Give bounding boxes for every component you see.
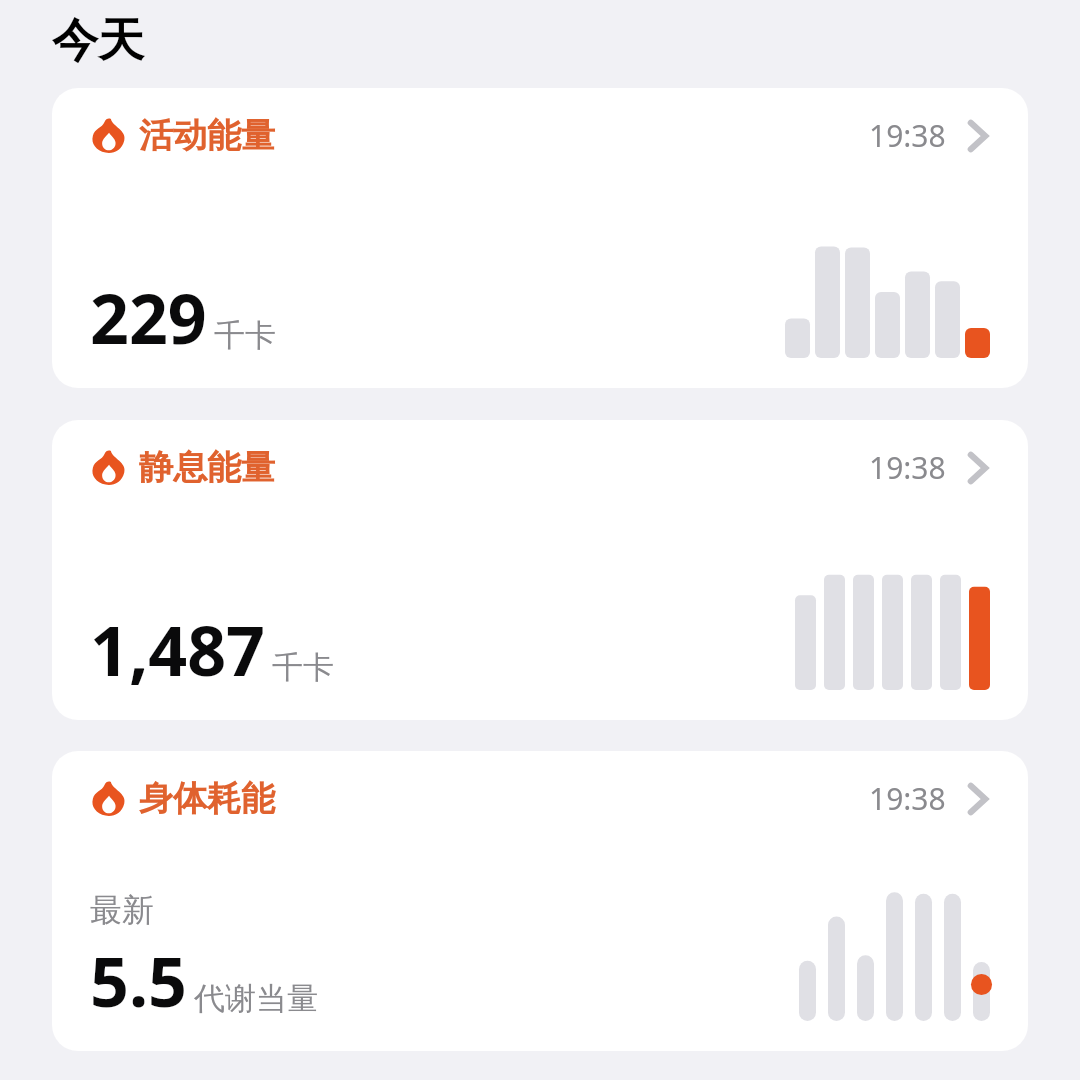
staticText: 19:38 <box>869 447 946 488</box>
staticText: 5.5 <box>90 934 187 1027</box>
staticText: 19:38 <box>869 115 946 156</box>
other: Open details <box>966 116 990 156</box>
staticText: 活动能量 <box>139 114 275 157</box>
staticText: 1,487 <box>90 603 265 696</box>
staticText: 最新 <box>90 890 154 930</box>
other: Chart <box>790 238 990 358</box>
other: Chart <box>790 570 990 690</box>
button[interactable]: 静息能量 <box>52 420 1028 720</box>
button[interactable]: 身体耗能 <box>52 751 1028 1051</box>
staticText: 今天 <box>52 12 144 70</box>
other: Chart <box>790 887 990 1021</box>
staticText: 千卡 <box>272 648 334 687</box>
staticText: 229 <box>90 271 207 364</box>
staticText: 静息能量 <box>139 446 275 489</box>
staticText: 19:38 <box>869 778 946 819</box>
other: Open details <box>966 779 990 819</box>
other: Open details <box>966 448 990 488</box>
button[interactable]: 活动能量 <box>52 88 1028 388</box>
staticText: 代谢当量 <box>194 979 318 1018</box>
staticText: 千卡 <box>214 316 276 355</box>
staticText: 身体耗能 <box>139 777 275 820</box>
